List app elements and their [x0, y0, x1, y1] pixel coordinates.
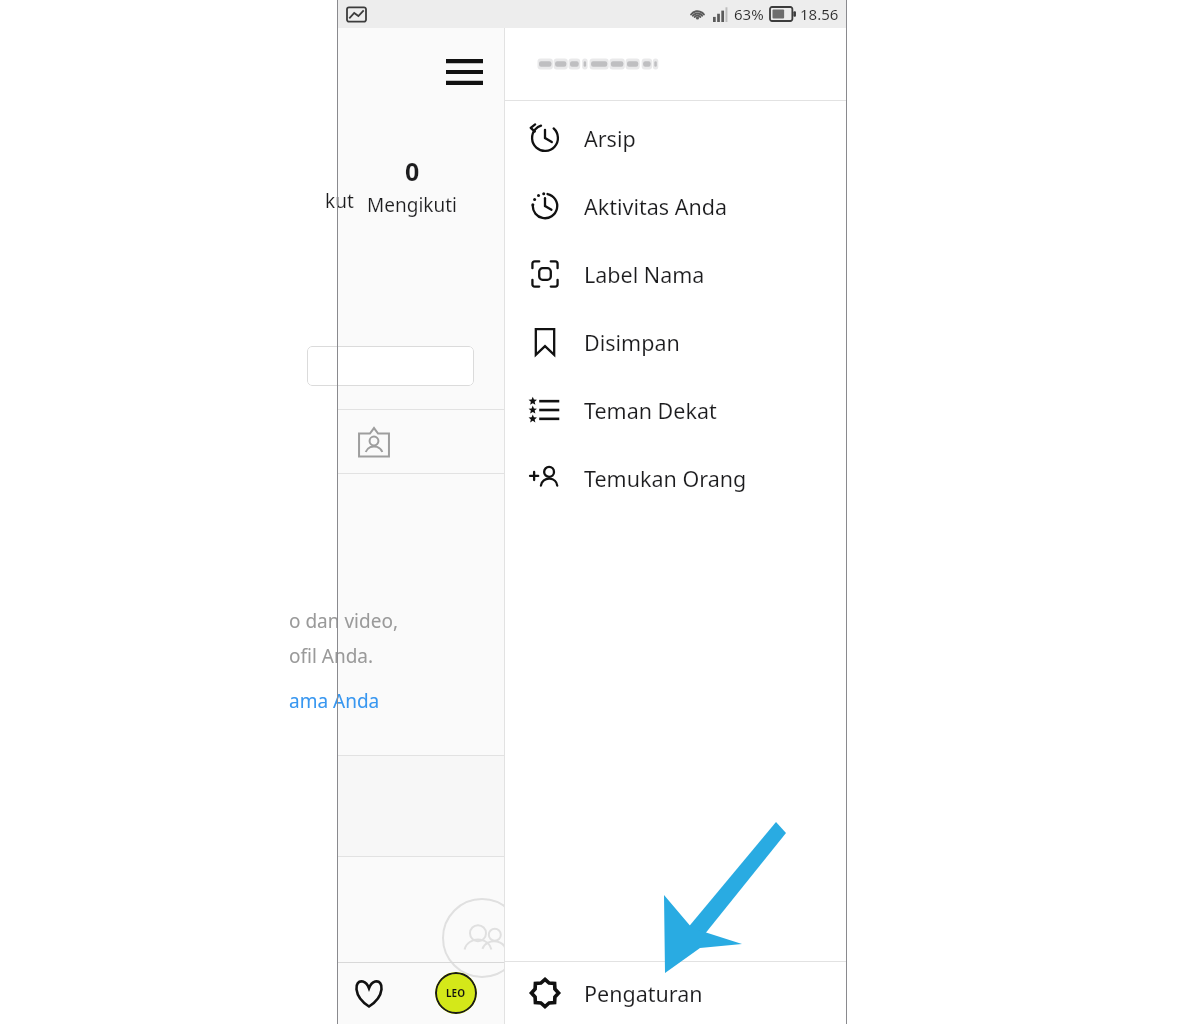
- staticText: Aktivitas Anda: [584, 192, 728, 221]
- staticText: 18.56: [800, 4, 839, 24]
- staticText: Teman Dekat: [584, 396, 717, 425]
- staticText: Mengikuti: [367, 192, 457, 218]
- button[interactable]: Label Nama: [505, 240, 847, 308]
- staticText: Disimpan: [584, 328, 680, 357]
- staticText: Temukan Orang: [584, 464, 747, 493]
- staticText: kut: [325, 188, 354, 214]
- button[interactable]: Menu: [440, 48, 488, 96]
- button[interactable]: Profile: [428, 965, 484, 1021]
- button[interactable]: Teman Dekat: [505, 376, 847, 444]
- staticText: LEO: [446, 986, 466, 1000]
- staticText: 63%: [734, 4, 764, 24]
- staticText: Pengaturan: [584, 979, 703, 1008]
- button[interactable]: Disimpan: [505, 308, 847, 376]
- button[interactable]: Pengaturan: [505, 962, 847, 1024]
- staticText: o dan video,: [289, 608, 399, 634]
- button[interactable]: Temukan Orang: [505, 444, 847, 512]
- staticText: ofil Anda.: [289, 643, 374, 669]
- staticText: Arsip: [584, 124, 636, 153]
- staticText: ama Anda: [289, 688, 380, 714]
- button[interactable]: Arsip: [505, 104, 847, 172]
- staticText: 0: [405, 154, 420, 188]
- button[interactable]: Activity: [339, 962, 399, 1024]
- button[interactable]: Aktivitas Anda: [505, 172, 847, 240]
- staticText: Label Nama: [584, 260, 705, 289]
- button[interactable]: [307, 346, 474, 386]
